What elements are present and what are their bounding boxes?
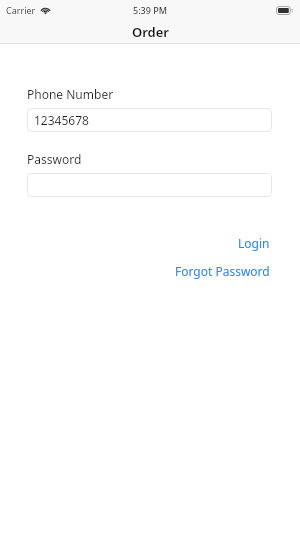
- staticText: 12345678: [34, 112, 89, 128]
- staticText: Forgot Password: [175, 263, 270, 279]
- staticText: 5:39 PM: [133, 4, 167, 16]
- staticText: Order: [132, 23, 169, 41]
- staticText: Carrier: [6, 4, 36, 16]
- staticText: Login: [238, 235, 270, 251]
- other: Wi-Fi signal: [40, 6, 51, 14]
- staticText: Phone Number: [27, 86, 114, 102]
- button[interactable]: Login: [236, 233, 272, 253]
- other: Battery: [276, 6, 293, 15]
- button[interactable]: Forgot Password: [173, 261, 272, 281]
- button[interactable]: [27, 173, 272, 197]
- button[interactable]: 12345678: [27, 108, 272, 132]
- staticText: Password: [27, 151, 82, 167]
